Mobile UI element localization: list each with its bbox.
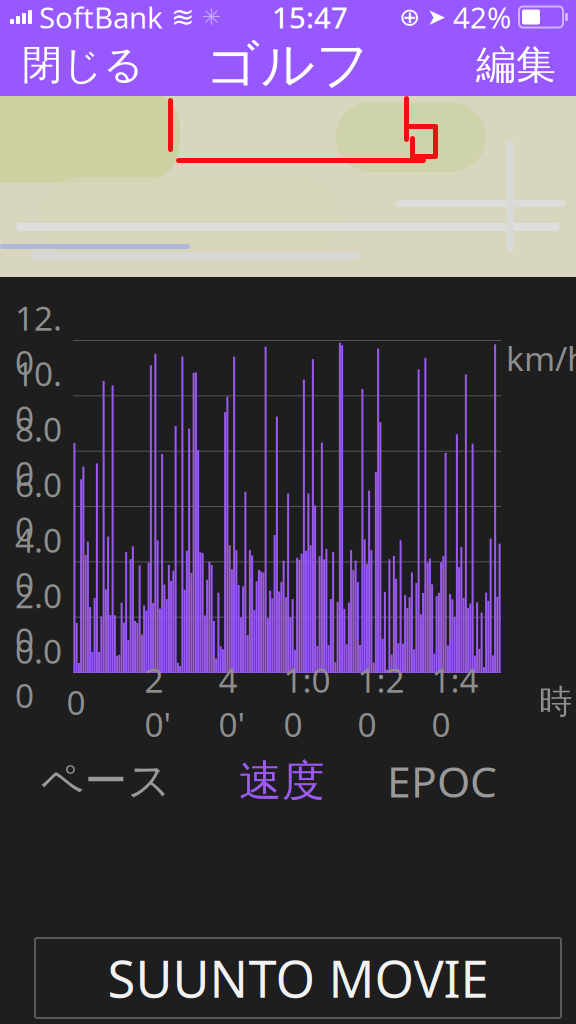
staticText: ゴルフ [205, 32, 370, 98]
staticText: 20' [144, 658, 171, 746]
staticText: 1:00 [283, 658, 330, 746]
staticText: 15:47 [272, 0, 348, 36]
staticText: 速度 [239, 755, 325, 807]
staticText: EPOC [387, 753, 497, 809]
staticText: 編集 [476, 40, 556, 89]
staticText: km/h [506, 336, 576, 380]
button[interactable]: 閉じる [0, 34, 166, 96]
staticText: 0.00 [15, 629, 62, 717]
staticText: ⊕ [399, 3, 420, 31]
staticText: 2.00 [15, 573, 62, 662]
staticText: 6.00 [15, 462, 62, 551]
staticText: SoftBank [39, 0, 163, 36]
staticText: 時 [539, 681, 572, 722]
button[interactable]: ペース [10, 746, 202, 816]
staticText: 42% [453, 0, 511, 36]
staticText: ✳ [202, 4, 221, 30]
button[interactable]: SUUNTO MOVIE [35, 938, 561, 1018]
staticText: 1:20 [357, 658, 404, 746]
button[interactable]: 速度 [202, 746, 362, 816]
staticText: 40' [218, 658, 245, 746]
staticText: SUUNTO MOVIE [107, 944, 488, 1012]
staticText: 8.00 [15, 407, 62, 495]
staticText: ➤ [427, 4, 446, 30]
staticText: 1:40 [431, 658, 478, 746]
staticText: ペース [40, 755, 171, 807]
staticText: 4.00 [15, 518, 62, 606]
staticText: 12.0 [15, 296, 62, 384]
button[interactable]: EPOC [362, 746, 522, 816]
staticText: ≋ [171, 1, 194, 33]
button[interactable]: 編集 [456, 34, 576, 96]
staticText: 10.0 [15, 351, 62, 440]
staticText: 0 [66, 680, 85, 724]
staticText: 閉じる [22, 40, 144, 89]
